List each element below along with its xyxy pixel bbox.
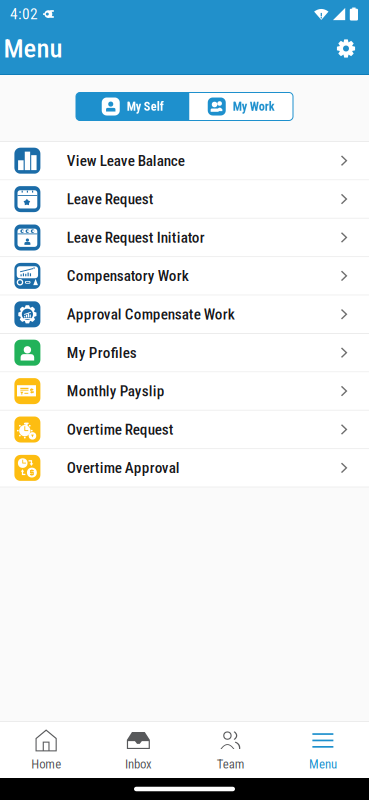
staticText: Approval Compensate Work — [67, 305, 235, 323]
button[interactable]: Menu — [277, 722, 369, 778]
staticText: Team — [217, 756, 245, 771]
staticText: Monthly Payslip — [67, 382, 165, 400]
staticText: My Self — [127, 99, 164, 114]
staticText: Overtime Approval — [67, 459, 180, 477]
staticText: Overtime Request — [67, 421, 174, 438]
button[interactable]: My Profiles — [0, 334, 369, 372]
staticText: My Profiles — [67, 344, 137, 362]
staticText: Compensatory Work — [67, 267, 189, 285]
staticText: Menu — [309, 756, 337, 771]
button[interactable]: My Work — [189, 92, 293, 120]
button[interactable]: Compensatory Work — [0, 257, 369, 296]
button[interactable]: Leave Request Initiator — [0, 219, 369, 257]
button[interactable]: My Self — [76, 92, 189, 120]
button[interactable]: Approval Compensate Work — [0, 296, 369, 334]
button[interactable]: Monthly Payslip — [0, 372, 369, 411]
staticText: 4:02 — [10, 5, 38, 23]
staticText: Menu — [3, 33, 62, 64]
button[interactable]: Leave Request — [0, 180, 369, 219]
staticText: Leave Request — [67, 190, 154, 208]
staticText: Leave Request Initiator — [67, 229, 205, 246]
button[interactable]: Home — [0, 722, 92, 778]
button[interactable]: View Leave Balance — [0, 142, 369, 180]
button[interactable]: Inbox — [92, 722, 184, 778]
staticText: My Work — [233, 99, 275, 114]
button[interactable]: Overtime Request — [0, 411, 369, 449]
button[interactable]: Team — [184, 722, 277, 778]
staticText: Inbox — [125, 756, 152, 771]
button[interactable]: Overtime Approval — [0, 449, 369, 488]
button[interactable]: Settings — [326, 31, 366, 71]
staticText: Home — [31, 756, 61, 771]
staticText: View Leave Balance — [67, 152, 185, 170]
